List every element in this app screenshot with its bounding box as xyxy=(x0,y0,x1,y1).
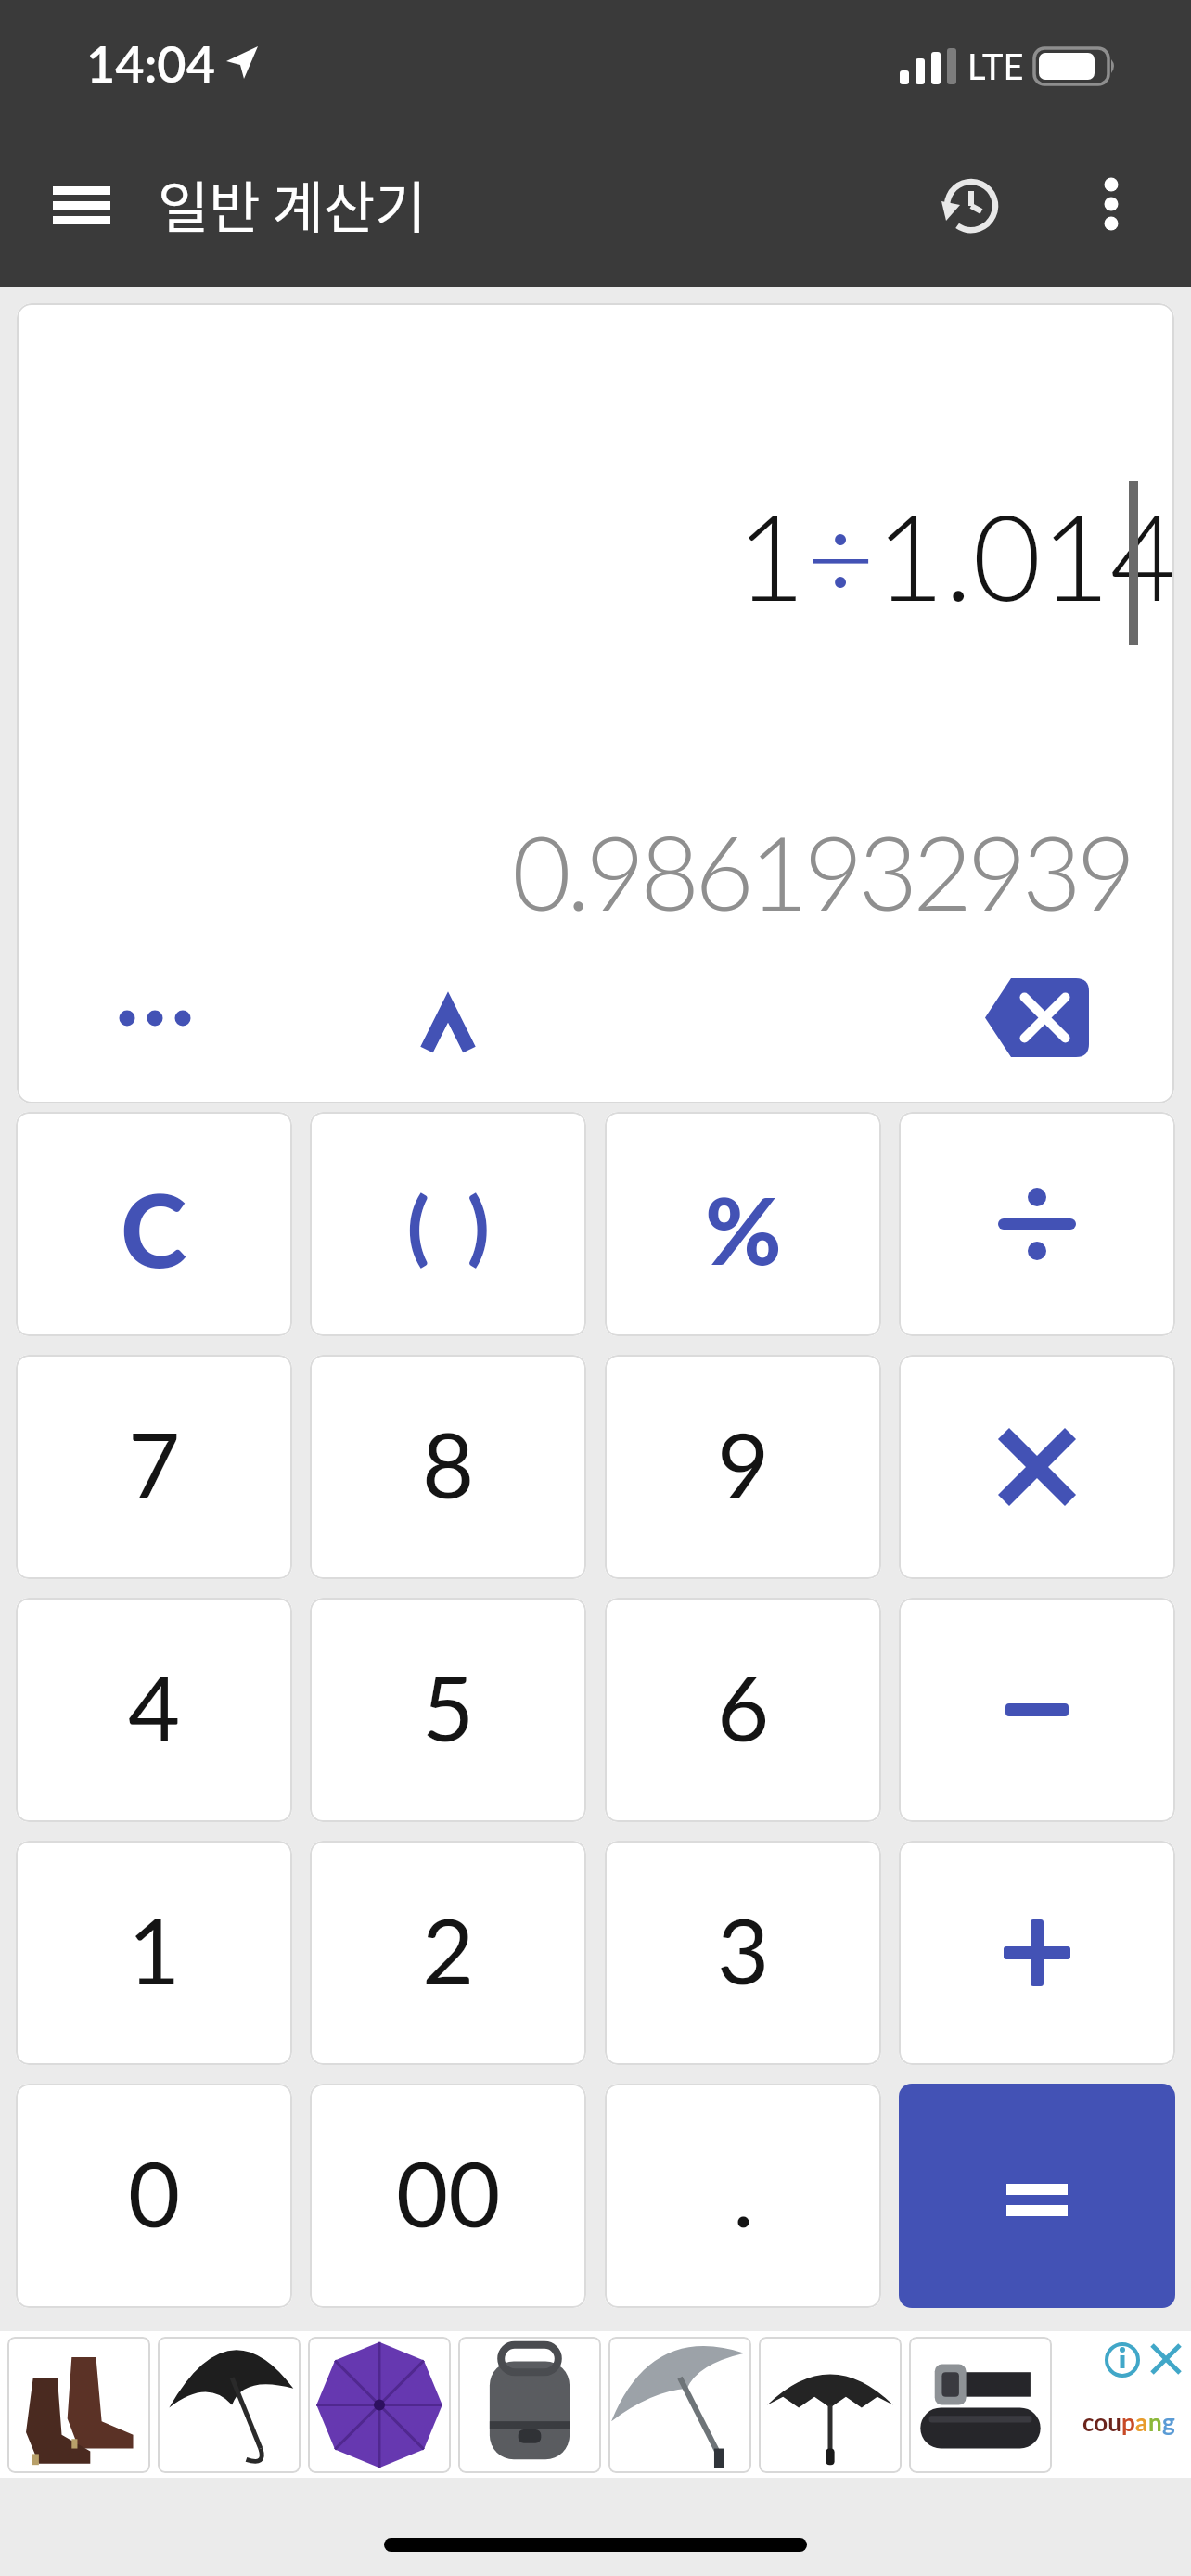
button[interactable]: 1 xyxy=(16,1841,292,2065)
staticText: 1.014 xyxy=(876,484,1174,627)
button[interactable] xyxy=(932,167,1010,245)
button[interactable] xyxy=(899,1841,1175,2065)
staticText: 0.9861932939 xyxy=(512,810,1132,932)
staticText: 2 xyxy=(422,1895,475,2003)
button[interactable] xyxy=(37,172,126,239)
staticText: 14:04 xyxy=(86,33,215,94)
button[interactable]: . xyxy=(605,2084,881,2308)
staticText: n xyxy=(1148,2407,1162,2436)
staticText: 6 xyxy=(717,1652,770,1760)
staticText: 1 xyxy=(128,1895,181,2003)
button[interactable] xyxy=(899,2084,1175,2308)
button[interactable]: 0 xyxy=(16,2084,292,2308)
staticText: 8 xyxy=(422,1409,475,1517)
staticText: . xyxy=(733,2138,754,2246)
staticText: % xyxy=(705,1173,782,1284)
staticText: 0 xyxy=(128,2138,181,2246)
button[interactable]: 9 xyxy=(605,1355,881,1579)
staticText: 3 xyxy=(717,1895,770,2003)
staticText: g xyxy=(1162,2407,1175,2436)
button[interactable]: C xyxy=(16,1112,292,1336)
staticText: ÷ xyxy=(806,484,876,627)
staticText: LTE xyxy=(967,45,1024,87)
button[interactable]: 8 xyxy=(310,1355,586,1579)
staticText: 00 xyxy=(396,2138,501,2246)
button[interactable] xyxy=(388,972,508,1083)
staticText: ( ) xyxy=(407,1177,490,1272)
button[interactable]: ( ) xyxy=(310,1112,586,1336)
button[interactable]: 7 xyxy=(16,1355,292,1579)
button[interactable]: % xyxy=(605,1112,881,1336)
button[interactable]: cou xyxy=(0,2331,1191,2478)
button[interactable] xyxy=(899,1598,1175,1822)
staticText: 4 xyxy=(128,1652,181,1760)
staticText: 5 xyxy=(422,1652,475,1760)
staticText: a xyxy=(1135,2407,1148,2436)
button[interactable]: 3 xyxy=(605,1841,881,2065)
staticText: 7 xyxy=(128,1409,181,1517)
button[interactable]: 4 xyxy=(16,1598,292,1822)
staticText: C xyxy=(121,1168,187,1289)
button[interactable]: 6 xyxy=(605,1598,881,1822)
staticText: p xyxy=(1121,2407,1135,2436)
button[interactable] xyxy=(1076,167,1146,245)
button[interactable] xyxy=(899,1355,1175,1579)
button[interactable] xyxy=(899,1112,1175,1336)
staticText: 1 xyxy=(736,484,806,627)
staticText: cou xyxy=(1082,2407,1121,2436)
staticText: 일반 계산기 xyxy=(158,163,427,244)
button[interactable]: 2 xyxy=(310,1841,586,2065)
button[interactable] xyxy=(76,967,234,1069)
button[interactable]: 00 xyxy=(310,2084,586,2308)
button[interactable] xyxy=(949,957,1125,1078)
button[interactable]: 5 xyxy=(310,1598,586,1822)
staticText: 9 xyxy=(717,1409,770,1517)
